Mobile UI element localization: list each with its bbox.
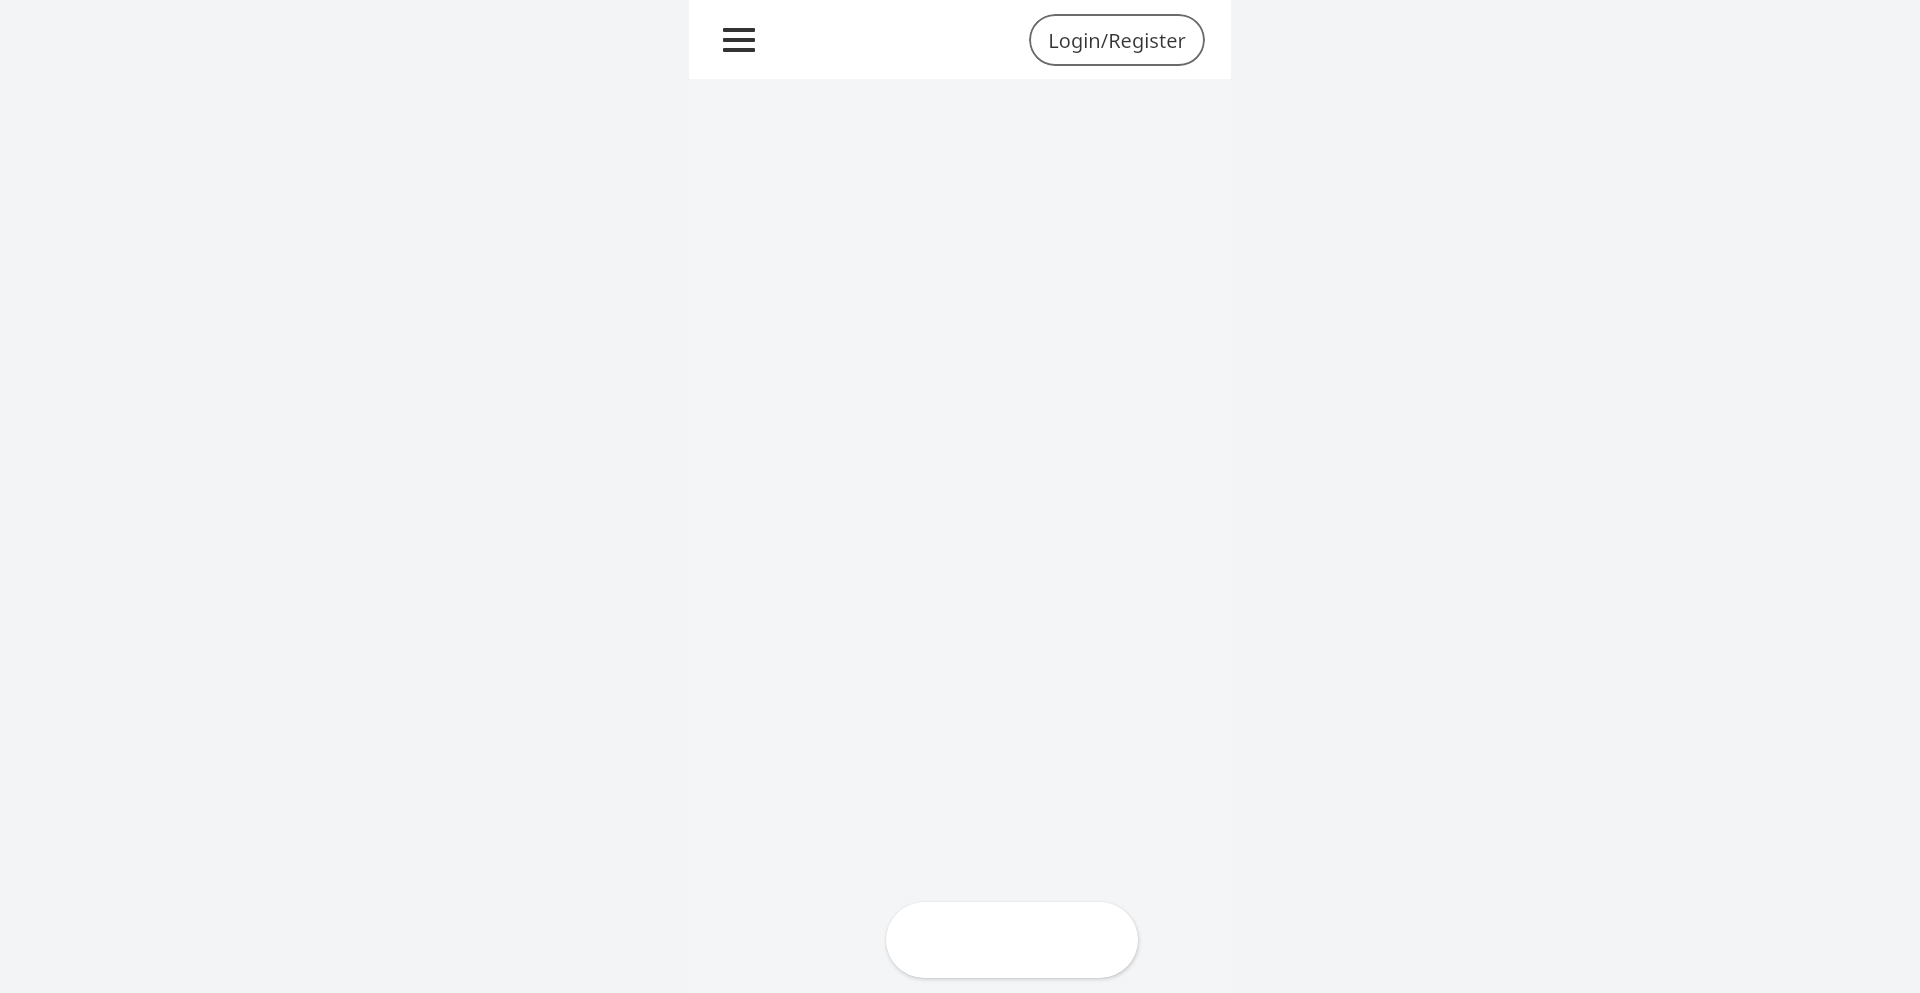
- button[interactable]: Open navigation menu: [717, 18, 761, 62]
- button[interactable]: Login/Register: [1029, 14, 1205, 66]
- staticText: Login/Register: [1048, 27, 1186, 54]
- button[interactable]: [886, 902, 1138, 978]
